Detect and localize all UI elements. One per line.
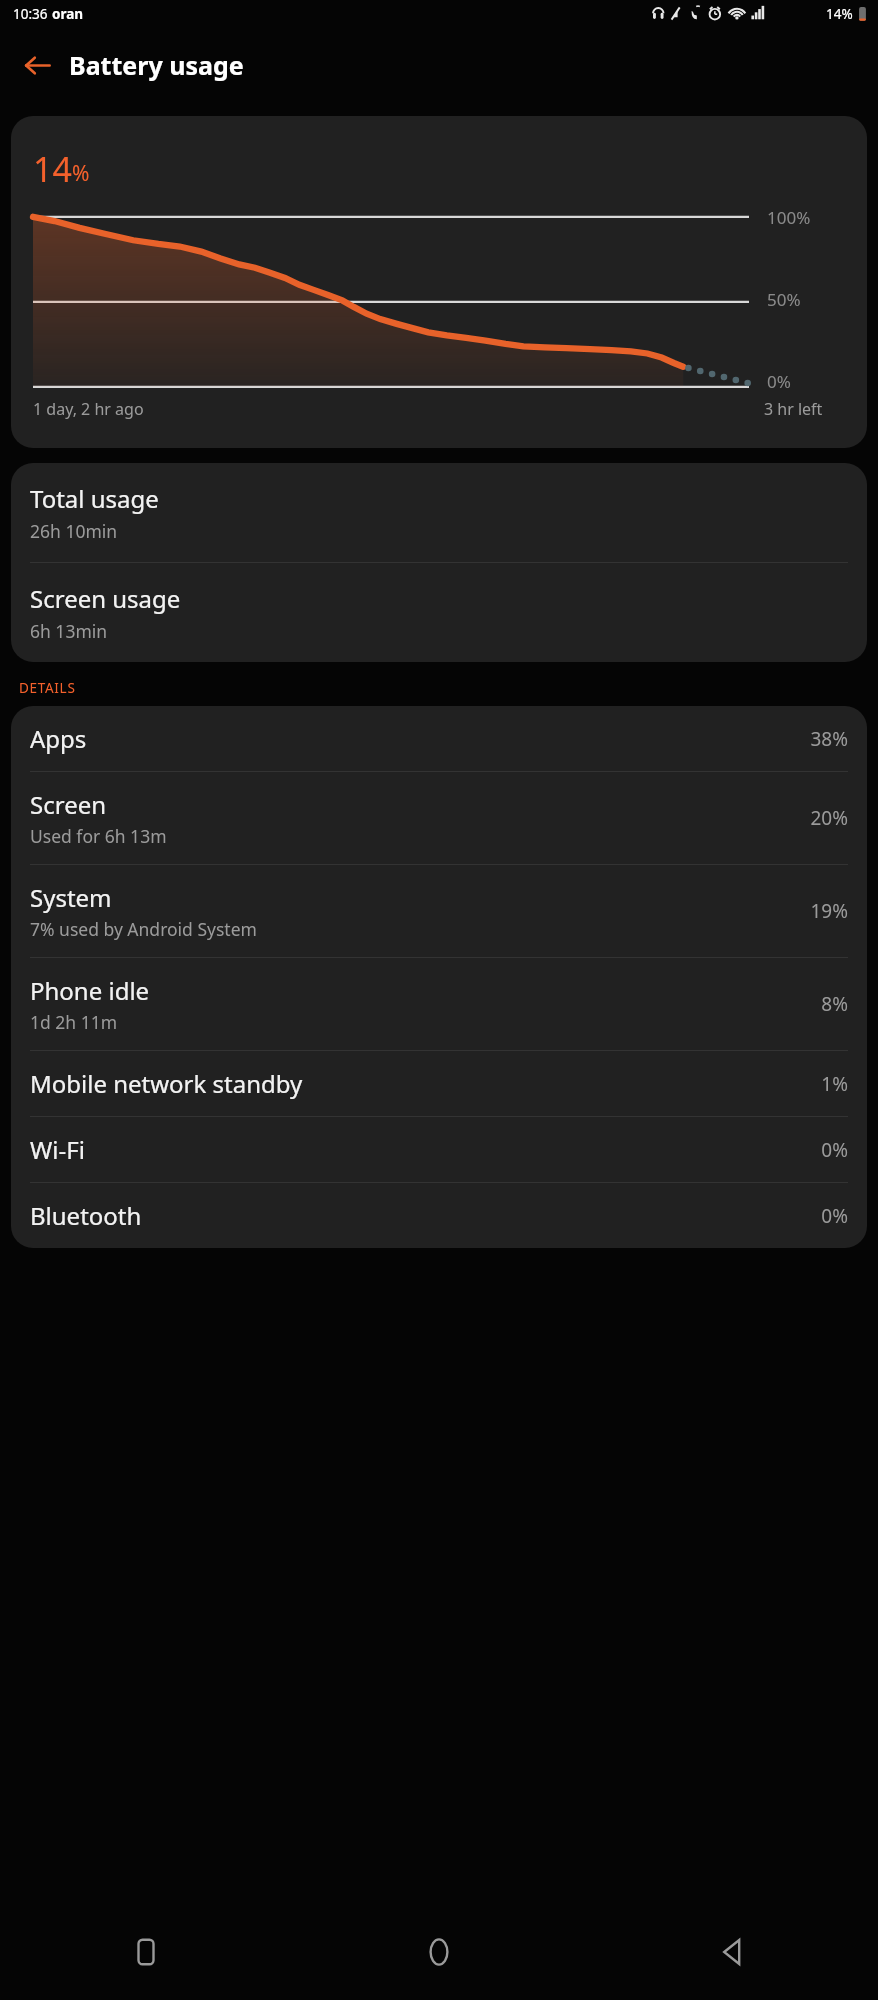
staticText: 1 day, 2 hr ago: [33, 398, 144, 420]
staticText: 8%: [821, 991, 848, 1017]
staticText: Phone idle: [30, 974, 150, 1007]
staticText: 26h 10min: [30, 519, 118, 543]
staticText: 38%: [810, 726, 848, 752]
staticText: 14: [33, 146, 72, 192]
button[interactable]: Back: [585, 1904, 878, 2000]
staticText: Battery usage: [69, 48, 244, 82]
button[interactable]: Screen usage: [11, 563, 867, 662]
staticText: 3 hr left: [764, 398, 823, 420]
staticText: Mobile network standby: [30, 1067, 303, 1100]
button[interactable]: 14: [11, 116, 867, 448]
staticText: 0%: [767, 370, 791, 392]
staticText: 50%: [767, 288, 801, 310]
staticText: Apps: [30, 722, 87, 755]
button[interactable]: Total usage: [11, 463, 867, 562]
staticText: 20%: [810, 805, 848, 831]
button[interactable]: Apps: [11, 706, 867, 771]
staticText: 6h 13min: [30, 619, 108, 643]
staticText: 0%: [821, 1203, 848, 1229]
staticText: DETAILS: [19, 679, 76, 697]
staticText: 0%: [821, 1137, 848, 1163]
staticText: 7% used by Android System: [30, 917, 257, 941]
button[interactable]: Bluetooth: [11, 1183, 867, 1248]
staticText: Used for 6h 13m: [30, 824, 167, 848]
button[interactable]: Mobile network standby: [11, 1051, 867, 1116]
staticText: Wi-Fi: [30, 1133, 85, 1166]
button[interactable]: Home: [292, 1904, 585, 2000]
button[interactable]: Phone idle: [11, 958, 867, 1050]
staticText: 1d 2h 11m: [30, 1010, 118, 1034]
staticText: 10:36: [13, 5, 48, 23]
staticText: Screen usage: [30, 582, 181, 615]
staticText: %: [72, 159, 90, 188]
button[interactable]: Back: [14, 42, 60, 88]
button[interactable]: Recents: [0, 1904, 292, 2000]
staticText: oran: [52, 5, 84, 23]
staticText: 14%: [826, 5, 853, 23]
staticText: 1%: [821, 1071, 848, 1097]
staticText: Total usage: [30, 482, 159, 515]
staticText: Bluetooth: [30, 1199, 142, 1232]
staticText: System: [30, 881, 112, 914]
button[interactable]: Screen: [11, 772, 867, 864]
staticText: 100%: [767, 206, 811, 228]
staticText: 19%: [810, 898, 848, 924]
button[interactable]: Wi-Fi: [11, 1117, 867, 1182]
staticText: Screen: [30, 788, 107, 821]
button[interactable]: System: [11, 865, 867, 957]
